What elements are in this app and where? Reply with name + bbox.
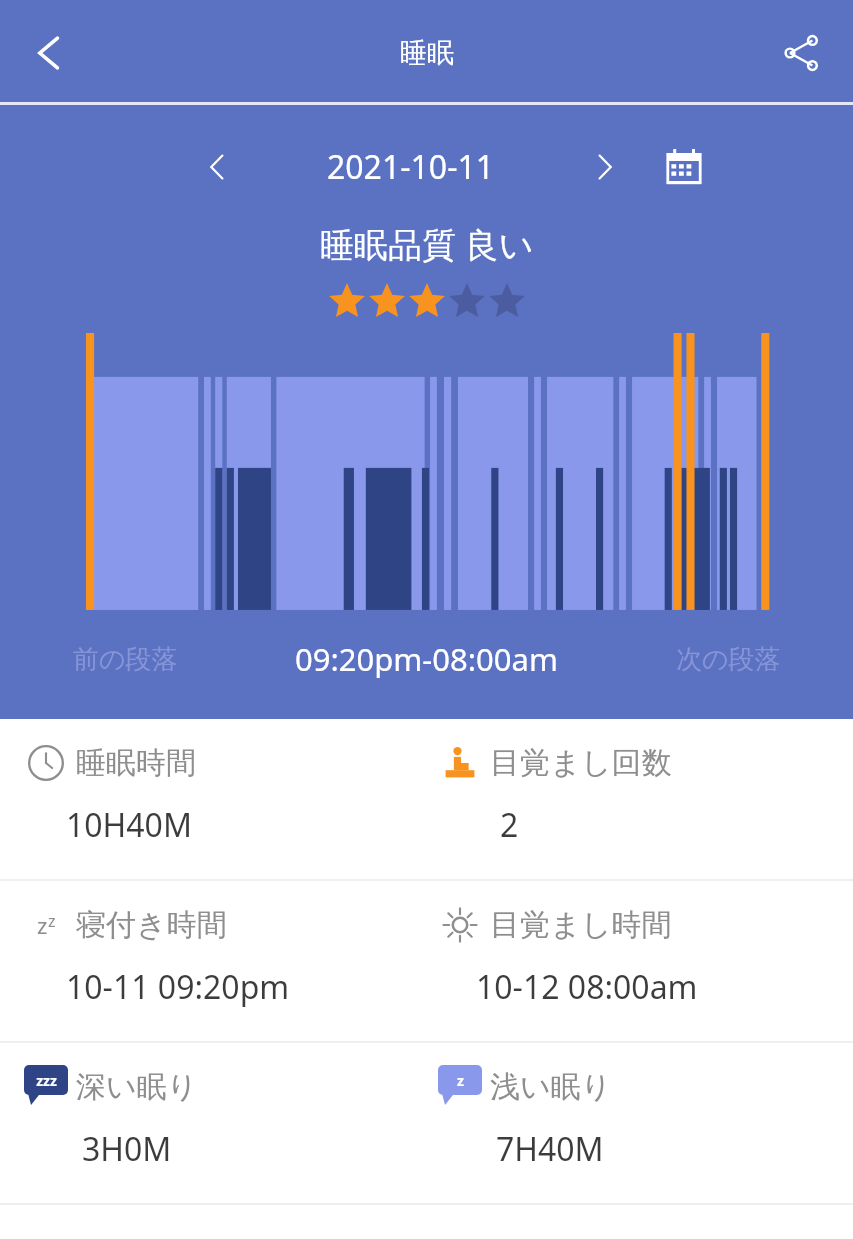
staticText: 前の段落 (73, 643, 178, 676)
button[interactable]: z (426, 1043, 853, 1203)
staticText: 次の段落 (676, 643, 781, 676)
staticText: 睡眠 (400, 36, 454, 70)
staticText: 3H0M (82, 1127, 172, 1171)
button[interactable]: Open calendar (656, 139, 712, 195)
button[interactable]: zzz (0, 1043, 426, 1203)
staticText: 目覚まし時間 (490, 906, 672, 944)
staticText: 10-12 08:00am (476, 965, 698, 1009)
staticText: 09:20pm-08:00am (295, 638, 558, 680)
staticText: z (48, 910, 56, 932)
button[interactable]: 睡眠時間 (0, 719, 426, 879)
staticText: 10H40M (66, 803, 192, 847)
button[interactable]: Back (14, 17, 86, 89)
staticText: 深い眠り (76, 1068, 198, 1106)
button[interactable]: Share (765, 17, 837, 89)
staticText: 浅い眠り (490, 1068, 612, 1106)
button[interactable]: 次の段落 (603, 628, 853, 690)
button[interactable]: 目覚まし時間 (426, 881, 853, 1041)
button[interactable]: 目覚まし回数 (426, 719, 853, 879)
staticText: z (457, 1071, 464, 1090)
staticText: zzz (36, 1071, 57, 1090)
staticText: 睡眠時間 (76, 744, 196, 782)
staticText: 10-11 09:20pm (66, 965, 290, 1009)
button[interactable]: 前の段落 (0, 628, 250, 690)
button[interactable]: Previous day (190, 139, 246, 195)
button[interactable]: Next day (576, 139, 632, 195)
staticText: 2021-10-11 (327, 145, 495, 189)
staticText: 目覚まし回数 (490, 744, 672, 782)
button[interactable]: z (0, 881, 426, 1041)
staticText: 睡眠品質 良い (320, 221, 534, 267)
staticText: 2 (500, 803, 519, 847)
staticText: 7H40M (496, 1127, 604, 1171)
staticText: 寝付き時間 (76, 906, 227, 944)
staticText: z (37, 910, 48, 940)
